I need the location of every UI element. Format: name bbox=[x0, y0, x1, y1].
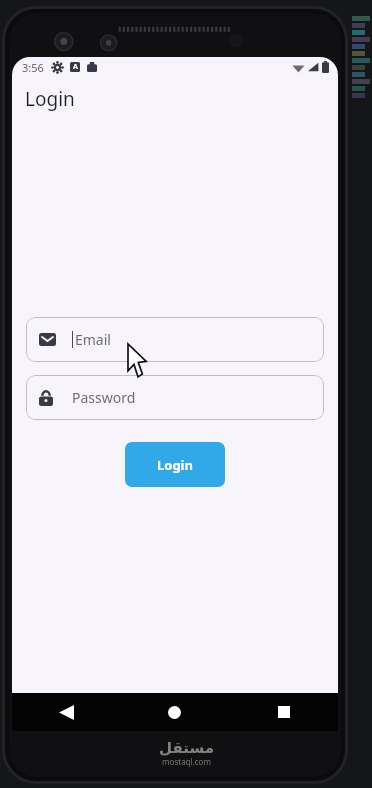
button[interactable]: Password bbox=[26, 375, 324, 420]
button[interactable]: Email bbox=[26, 317, 324, 362]
staticText: A bbox=[73, 62, 78, 72]
button[interactable]: Home bbox=[120, 693, 229, 731]
staticText: Password bbox=[72, 388, 136, 407]
staticText: mostaql.com bbox=[162, 756, 211, 767]
staticText: Login bbox=[157, 456, 193, 474]
staticText: مستقل bbox=[159, 739, 214, 756]
button[interactable]: Login bbox=[125, 442, 225, 487]
staticText: 3:56 bbox=[22, 60, 44, 75]
button[interactable]: Recent apps bbox=[229, 693, 338, 731]
button[interactable]: Back bbox=[12, 693, 120, 731]
staticText: Email bbox=[75, 330, 111, 349]
staticText: Login bbox=[25, 86, 75, 112]
